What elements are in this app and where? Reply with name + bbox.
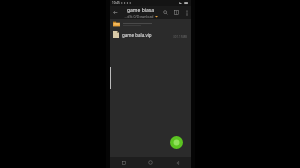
staticText: …dSt.0/Download bbox=[124, 14, 154, 19]
staticText: 10:45 bbox=[112, 1, 120, 5]
staticText: game biasa sss… bbox=[121, 7, 160, 14]
button[interactable]: Recents bbox=[110, 157, 137, 168]
button[interactable] bbox=[110, 19, 191, 29]
button[interactable]: Back bbox=[110, 7, 121, 18]
button[interactable]: Add bbox=[170, 136, 183, 149]
button[interactable]: More options bbox=[182, 8, 191, 17]
button[interactable]: Home bbox=[137, 157, 164, 168]
button[interactable]: game biasa sss… bbox=[121, 7, 160, 19]
button[interactable]: Search bbox=[160, 7, 171, 18]
staticText: 301.15MB bbox=[173, 35, 188, 39]
button[interactable]: Back bbox=[164, 157, 191, 168]
button[interactable]: Change view bbox=[171, 7, 182, 18]
staticText: game bala.vip bbox=[122, 32, 152, 38]
button[interactable]: game bala.vip bbox=[110, 29, 191, 40]
